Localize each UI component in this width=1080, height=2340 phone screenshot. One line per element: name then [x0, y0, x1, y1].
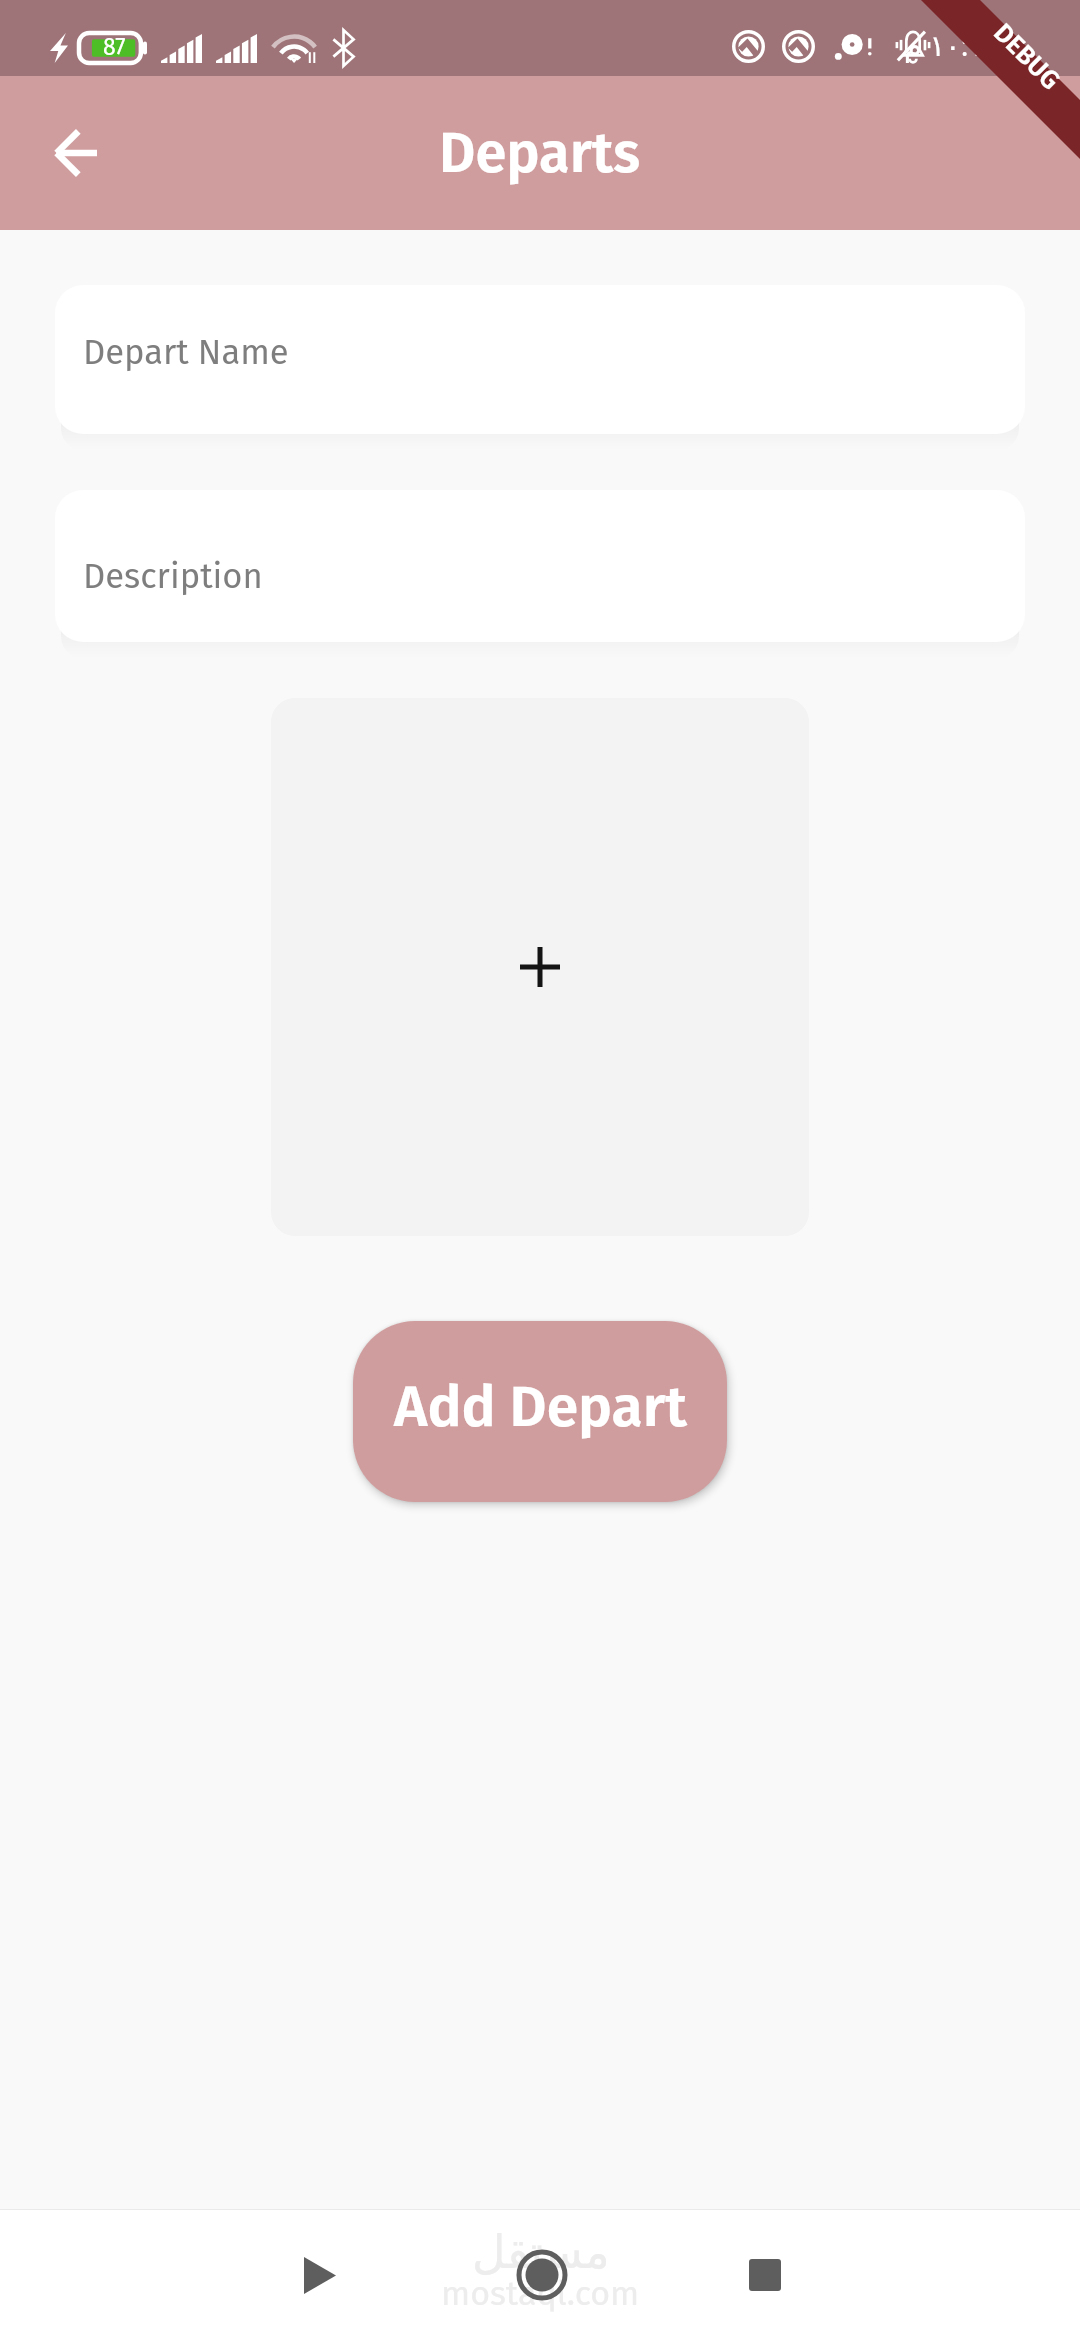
button[interactable]: Description — [55, 490, 1025, 642]
staticText: Add Depart — [394, 1373, 687, 1441]
button[interactable]: Add image — [271, 698, 809, 1236]
staticText: Depart Name — [83, 332, 289, 373]
staticText: ١٠:١ م — [904, 25, 984, 64]
button[interactable]: Recents — [710, 2220, 820, 2330]
button[interactable]: Depart Name — [55, 285, 1025, 434]
staticText: mostaql.com — [441, 2273, 640, 2314]
staticText: DEBUG — [987, 17, 1066, 96]
staticText: مستقل — [472, 2225, 610, 2279]
staticText: Departs — [439, 120, 641, 187]
button[interactable]: Home — [487, 2220, 597, 2330]
staticText: Description — [83, 556, 263, 597]
button[interactable]: Back — [28, 106, 122, 200]
button[interactable]: Back — [265, 2220, 375, 2330]
button[interactable]: Add Depart — [353, 1321, 727, 1502]
staticText: 87 — [103, 33, 126, 61]
